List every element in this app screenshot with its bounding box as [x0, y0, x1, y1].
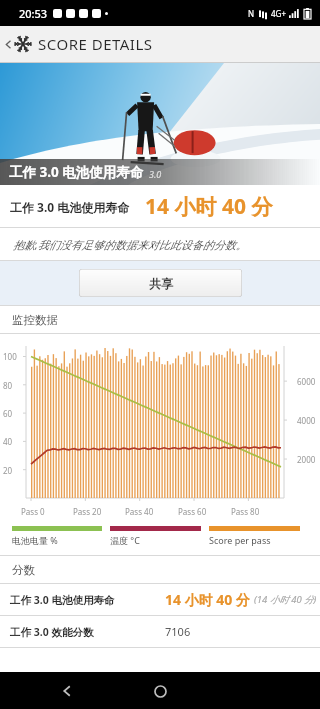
staticText: 7106	[165, 624, 191, 639]
staticText: 20	[3, 465, 13, 476]
staticText: 2000	[297, 454, 316, 465]
staticText: 工作 3.0 电池使用寿命	[9, 163, 144, 181]
staticText: 抱歉,我们没有足够的数据来对比此设备的分数。	[13, 237, 247, 252]
button[interactable]: Back	[54, 678, 80, 704]
staticText: Pass 40	[125, 506, 154, 517]
staticText: 温度 °C	[110, 534, 140, 546]
staticText: (14 小时 40 分)	[254, 593, 317, 606]
staticText: 4G+	[271, 8, 286, 19]
staticText: 监控数据	[12, 313, 58, 327]
staticText: 20:53	[19, 6, 48, 21]
staticText: 14 小时 40 分	[165, 590, 250, 609]
button[interactable]: Home	[147, 678, 173, 704]
staticText: 工作 3.0 电池使用寿命	[10, 593, 115, 607]
staticText: 80	[3, 380, 13, 391]
staticText: N	[248, 8, 255, 19]
staticText: 分数	[12, 563, 35, 577]
staticText: 14 小时 40 分	[145, 192, 273, 221]
button[interactable]: 工作 3.0 电池使用寿命	[0, 584, 320, 615]
button[interactable]: 工作 3.0 效能分数	[0, 616, 320, 647]
staticText: Pass 80	[231, 506, 260, 517]
staticText: 6000	[297, 376, 316, 387]
staticText: SCORE DETAILS	[38, 34, 153, 54]
staticText: Score per pass	[209, 534, 271, 546]
button[interactable]: Back	[0, 26, 320, 62]
other: Back	[3, 39, 14, 50]
staticText: 40	[3, 436, 13, 447]
staticText: 4000	[297, 415, 316, 426]
staticText: 100	[3, 351, 17, 362]
staticText: 共享	[149, 276, 173, 291]
staticText: Pass 20	[73, 506, 102, 517]
staticText: 60	[3, 408, 13, 419]
staticText: 电池电量 %	[12, 534, 58, 546]
button[interactable]: 共享	[79, 269, 242, 297]
staticText: 3.0	[149, 168, 162, 180]
staticText: 工作 3.0 效能分数	[10, 625, 94, 639]
staticText: Pass 60	[178, 506, 207, 517]
staticText: 工作 3.0 电池使用寿命	[10, 199, 130, 215]
staticText: Pass 0	[21, 506, 45, 517]
